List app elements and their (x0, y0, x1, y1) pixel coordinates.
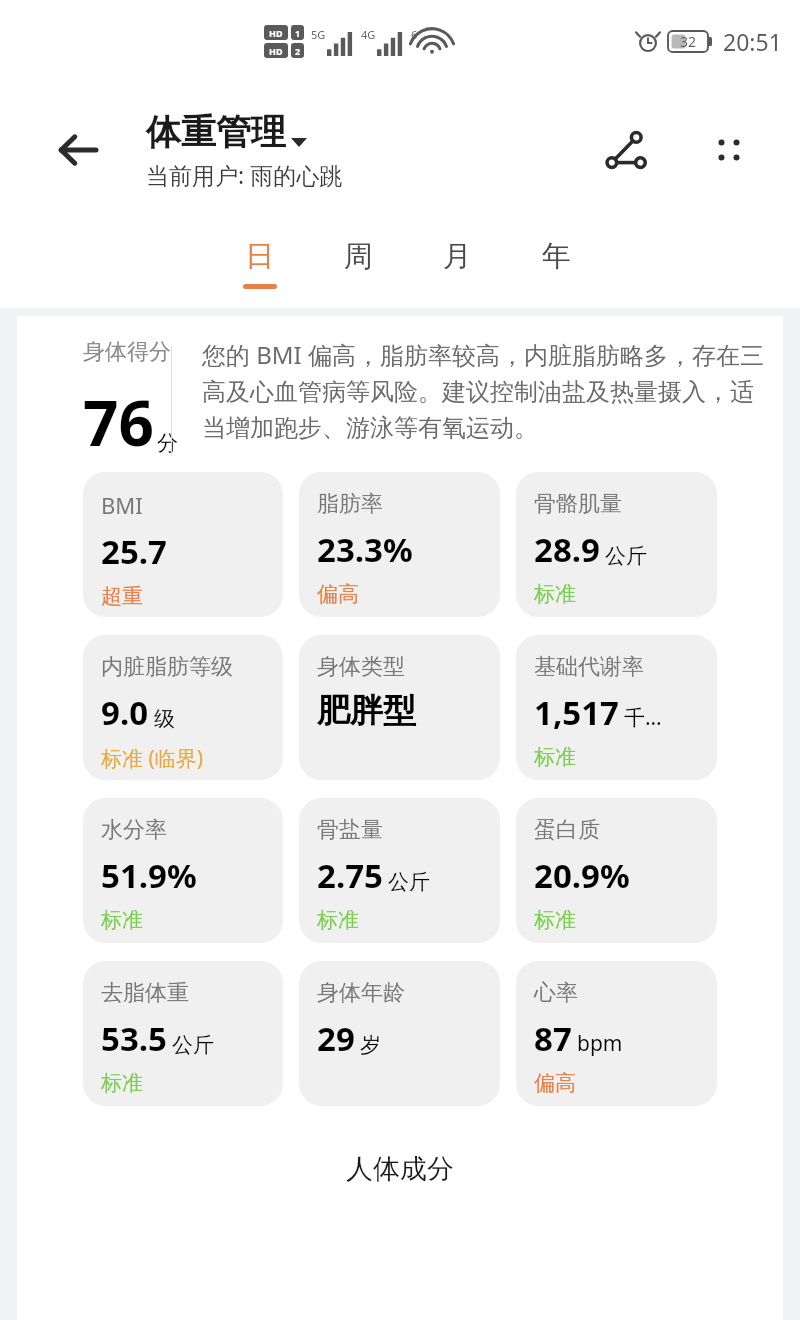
staticText: 周 (344, 238, 373, 275)
button[interactable]: 体重管理 (146, 110, 343, 190)
staticText: 29 (317, 1016, 355, 1061)
staticText: 5G (311, 27, 326, 42)
button[interactable]: 基础代谢率 (516, 635, 717, 780)
staticText: HD (269, 45, 283, 57)
button[interactable]: 内脏脂肪等级 (83, 635, 283, 780)
button[interactable]: 脂肪率 (299, 472, 500, 617)
staticText: 28.9 (534, 527, 600, 572)
staticText: 人体成分 (17, 1152, 783, 1186)
button[interactable]: 骨盐量 (299, 798, 500, 943)
button[interactable]: Back (48, 120, 108, 180)
button[interactable]: 日 (210, 218, 309, 308)
button[interactable]: 水分率 (83, 798, 283, 943)
button[interactable]: 周 (309, 218, 408, 308)
staticText: 千… (624, 703, 662, 732)
staticText: 标准 (317, 907, 359, 933)
staticText: 分 (157, 430, 171, 456)
staticText: 20:51 (723, 26, 782, 57)
staticText: 月 (443, 238, 472, 275)
staticText: 肥胖型 (317, 690, 416, 732)
staticText: 年 (542, 238, 571, 275)
staticText: 水分率 (101, 816, 167, 844)
staticText: 公斤 (388, 869, 430, 895)
button[interactable]: 去脂体重 (83, 961, 283, 1106)
staticText: 76 (83, 380, 154, 464)
staticText: 20.9% (534, 853, 630, 898)
staticText: 内脏脂肪等级 (101, 653, 233, 681)
staticText: bpm (577, 1029, 623, 1058)
staticText: 标准 (534, 581, 576, 607)
button[interactable]: 身体年龄 (299, 961, 500, 1106)
staticText: 公斤 (172, 1032, 214, 1058)
staticText: 标准 (534, 907, 576, 933)
button[interactable]: 月 (408, 218, 507, 308)
button[interactable]: 蛋白质 (516, 798, 717, 943)
staticText: 4G (361, 27, 376, 42)
staticText: 去脂体重 (101, 979, 189, 1007)
staticText: 体重管理 (146, 110, 286, 154)
staticText: 身体类型 (317, 653, 405, 681)
staticText: 标准 (534, 744, 576, 770)
button[interactable]: BMI (83, 472, 283, 617)
staticText: 25.7 (101, 529, 167, 574)
staticText: 心率 (534, 979, 578, 1007)
staticText: 87 (534, 1016, 572, 1061)
staticText: 身体年龄 (317, 979, 405, 1007)
staticText: 6 (411, 27, 418, 42)
staticText: 岁 (360, 1032, 381, 1058)
staticText: 公斤 (605, 543, 647, 569)
staticText: 53.5 (101, 1016, 167, 1061)
staticText: 1 (295, 27, 301, 39)
staticText: 标准 (临界) (101, 744, 204, 773)
staticText: BMI (101, 490, 143, 520)
staticText: 级 (154, 706, 175, 732)
staticText: 偏高 (317, 581, 359, 607)
button[interactable]: Share (596, 119, 658, 181)
staticText: 2 (295, 45, 301, 57)
staticText: 当前用户: 雨的心跳 (146, 159, 343, 190)
staticText: 51.9% (101, 853, 197, 898)
staticText: 1,517 (534, 690, 619, 735)
staticText: 23.3% (317, 527, 413, 572)
staticText: 标准 (101, 1070, 143, 1096)
staticText: 您的 BMI 偏高，脂肪率较高，内脏脂肪略多，存在三高及心血管病等风险。建议控制… (202, 338, 765, 443)
staticText: 骨盐量 (317, 816, 383, 844)
staticText: 偏高 (534, 1070, 576, 1096)
staticText: 骨骼肌量 (534, 490, 622, 518)
staticText: 32 (680, 32, 697, 51)
button[interactable]: 年 (507, 218, 606, 308)
staticText: 标准 (101, 907, 143, 933)
staticText: HD (269, 27, 283, 39)
staticText: 超重 (101, 583, 143, 609)
staticText: 身体得分 (83, 338, 171, 366)
button[interactable]: More options (698, 119, 760, 181)
button[interactable]: 身体类型 (299, 635, 500, 780)
staticText: 脂肪率 (317, 490, 383, 518)
staticText: 9.0 (101, 690, 149, 735)
button[interactable]: 心率 (516, 961, 717, 1106)
staticText: 2.75 (317, 853, 383, 898)
staticText: 日 (245, 238, 274, 275)
staticText: 蛋白质 (534, 816, 600, 844)
staticText: 基础代谢率 (534, 653, 644, 681)
button[interactable]: 骨骼肌量 (516, 472, 717, 617)
